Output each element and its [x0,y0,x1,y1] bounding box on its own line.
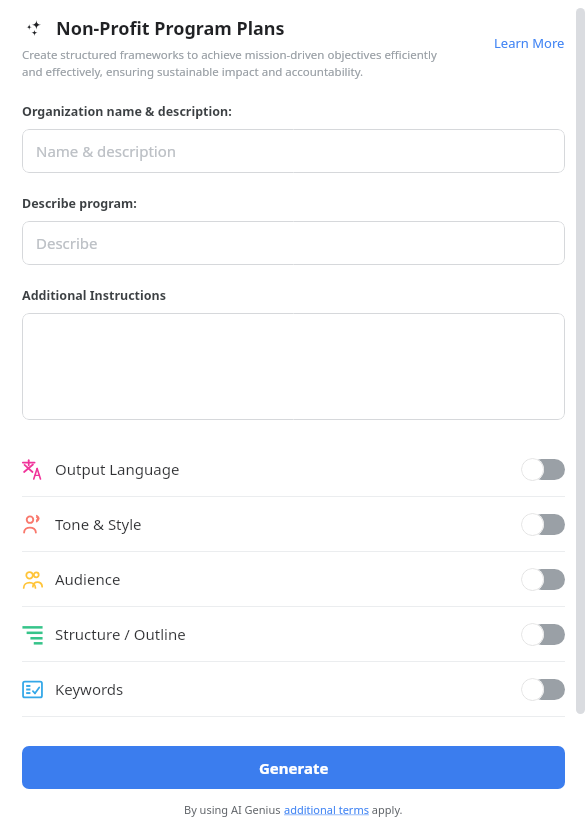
button[interactable]: Structure / Outline [0,607,587,661]
button[interactable]: Tone & Style [0,497,587,551]
staticText: Generate [259,758,329,778]
button[interactable]: Keywords [0,662,587,716]
button[interactable]: Audience [0,552,587,606]
staticText: Non-Profit Program Plans [56,16,285,41]
staticText: Describe [36,233,98,253]
staticText: Organization name & description: [22,103,232,120]
button[interactable]: Output Language [0,442,587,496]
button[interactable]: additional terms [284,802,369,817]
staticText: apply. [369,802,403,817]
staticText: Audience [55,569,121,589]
staticText: Learn More [494,34,565,52]
staticText: additional terms [284,802,369,817]
staticText: Structure / Outline [55,624,186,644]
staticText: Additional Instructions [22,287,166,304]
staticText: Create structured frameworks to achieve … [22,47,447,79]
staticText: Keywords [55,679,124,699]
button[interactable]: Generate [22,746,565,789]
staticText: Output Language [55,459,180,479]
staticText: Describe program: [22,195,137,212]
button[interactable]: Describe [22,221,565,265]
button[interactable]: Name & description [22,129,565,173]
button[interactable] [22,313,565,420]
staticText: By using AI Genius [184,802,284,817]
button[interactable]: Learn More [494,34,565,52]
staticText: Tone & Style [55,514,142,534]
staticText: Name & description [36,141,177,161]
